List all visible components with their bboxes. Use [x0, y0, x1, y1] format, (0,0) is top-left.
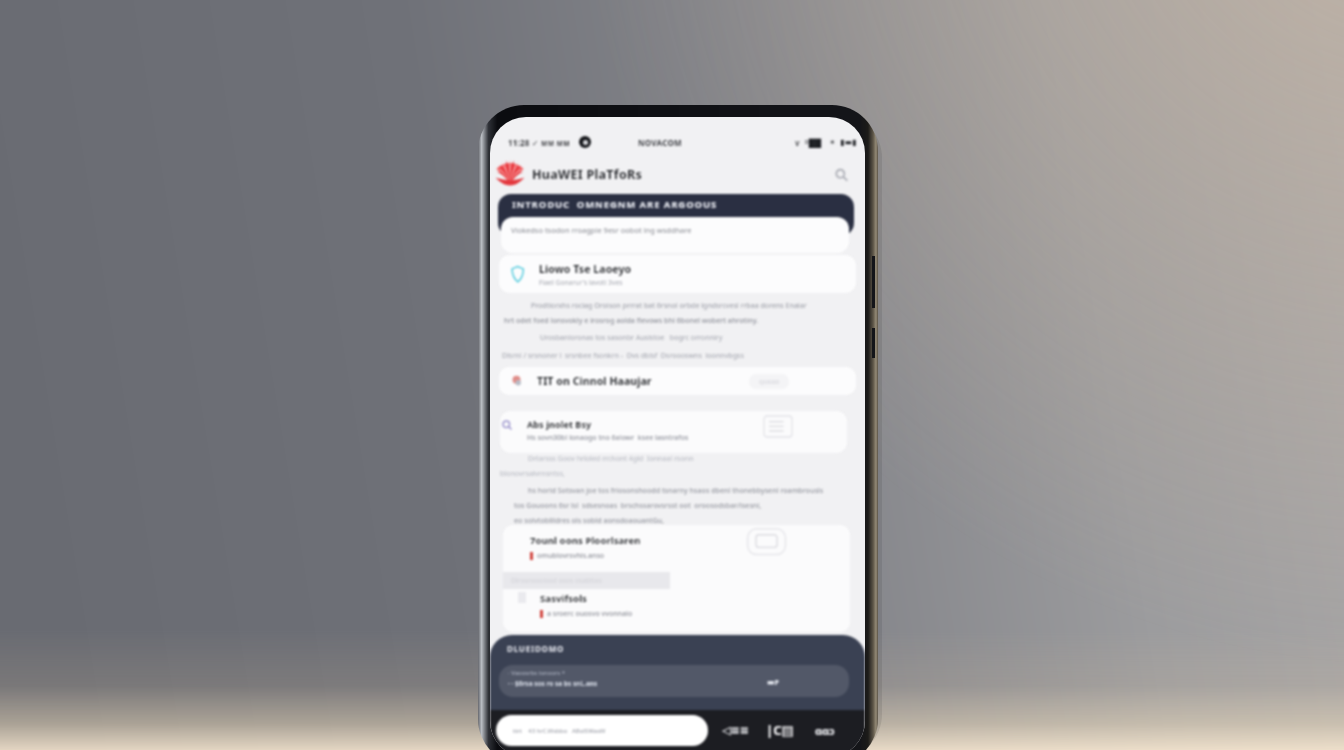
button[interactable]: ttrt 43 hrC.Wsbbo ABolSWasW: [496, 715, 708, 746]
staticText: ◁≡≡: [722, 724, 749, 737]
staticText: blonovrsalvrnsntss,: [500, 468, 565, 478]
button[interactable]: Home: [761, 715, 799, 745]
staticText: · Vaoosrbs tsnoors *: [508, 669, 565, 677]
staticText: ᴰ██: [805, 137, 822, 148]
staticText: tos Gouoons 6sr lsl sdsesnoas brschssaro…: [514, 500, 762, 510]
staticText: ✶: [829, 138, 836, 147]
staticText: Liowo Tse Laoeyo: [539, 262, 632, 276]
staticText: Abs jnolet Bsy: [527, 418, 592, 430]
staticText: ɑɑɔ: [815, 723, 835, 738]
staticText: Fiael Gonarur's lavoti 3ves: [539, 278, 623, 287]
button[interactable]: Viokedso tsodon rroagpie 9esr oobot lng …: [501, 217, 849, 253]
staticText: omublovrsvhis.anso: [537, 551, 605, 561]
button[interactable]: Abs jnolet Bsy: [502, 418, 850, 443]
staticText: Viokedso tsodon rroagpie 9esr oobot lng …: [511, 225, 692, 235]
staticText: DLUEIDOMO: [507, 643, 565, 654]
staticText: INTRODUC OMNEGNM ARE ARGOOUS: [512, 198, 718, 211]
staticText: NOVACOM: [638, 137, 682, 148]
staticText: Dlsrni / srsnoner l srsnbee fsonkrn - Dv…: [502, 350, 744, 360]
staticText: Hs sovn30bl lonaogo tno 6alowr ksee lasn…: [527, 433, 689, 443]
staticText: eo solvtoblildres ols sobld aonsdoaouant…: [514, 515, 665, 525]
staticText: ▮▬▮: [840, 138, 857, 147]
staticText: 11:28 ✓ ᴍᴍ ᴍᴍ: [508, 137, 570, 148]
button[interactable]: 7ounl oons Ploorlsaren: [530, 534, 843, 564]
staticText: Sasvifsols: [540, 592, 587, 605]
button[interactable]: TIT on Cinnol Haaujar: [499, 367, 856, 395]
button[interactable]: INTRODUC OMNEGNM ARE ARGOOUS: [498, 194, 854, 236]
staticText: Urosbanloronas tos sasonbr Ausistoe bogr…: [540, 332, 723, 342]
staticText: ▬ᴘ: [767, 676, 779, 687]
staticText: hrt odet foed lonsvokly e irosrog aolda …: [504, 315, 759, 325]
staticText: ᴠ: [795, 137, 800, 148]
staticText: ttrt 43 hrC.Wsbbo ABolSWasW: [513, 727, 606, 735]
button[interactable]: Recents: [806, 715, 844, 745]
staticText: HuaWEI PlaTfoRs: [532, 166, 643, 183]
staticText: 7ounl oons Ploorlsaren: [530, 534, 641, 547]
button[interactable]: Search: [830, 163, 852, 185]
button[interactable]: · Vaoosrbs tsnoors *: [499, 665, 849, 697]
staticText: Prodtiorxhs rociag Oroison prrrat bat 6r…: [531, 300, 807, 310]
staticText: TIT on Cinnol Haaujar: [537, 374, 652, 388]
staticText: QUEED: [759, 378, 780, 386]
staticText: hs horid Sotsvan joe tos friosonshoodd t…: [528, 485, 824, 495]
staticText: |C▤: [766, 721, 794, 739]
button[interactable]: Sasvifsols: [518, 592, 849, 619]
staticText: · · $6rsa sos ro sa bs snL.ans: [508, 679, 598, 688]
staticText: Drtarsss Goov hrloled rrchont 4gld Ionna…: [528, 453, 694, 463]
button[interactable]: Back: [716, 715, 754, 745]
staticText: a sroerc ouosvo vvonnaio: [547, 609, 633, 619]
button[interactable]: Liowo Tse Laoeyo: [499, 255, 856, 293]
